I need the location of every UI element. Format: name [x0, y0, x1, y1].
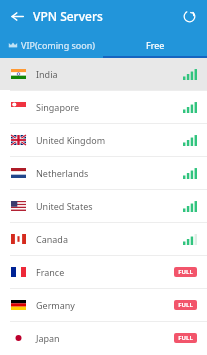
staticText: France — [36, 266, 174, 278]
button[interactable]: Netherlands — [0, 157, 207, 189]
staticText: Singapore — [36, 101, 183, 113]
staticText: Netherlands — [36, 167, 183, 179]
staticText: FULL — [178, 301, 193, 309]
staticText: Germany — [36, 299, 174, 311]
staticText: Free — [146, 39, 165, 51]
staticText: FULL — [178, 268, 193, 276]
button[interactable]: VIP(coming soon) — [0, 32, 103, 58]
staticText: VIP(coming soon) — [21, 39, 95, 51]
button[interactable]: Free — [103, 32, 207, 58]
staticText: United Kingdom — [36, 134, 183, 146]
button[interactable]: India — [0, 58, 207, 90]
button[interactable]: Back — [4, 3, 30, 29]
button[interactable]: France — [0, 256, 207, 288]
staticText: VPN Servers — [33, 8, 103, 24]
button[interactable]: Canada — [0, 223, 207, 255]
button[interactable]: Germany — [0, 289, 207, 321]
staticText: Japan — [36, 332, 174, 344]
button[interactable]: Japan — [0, 322, 207, 354]
staticText: Canada — [36, 233, 183, 245]
button[interactable]: Singapore — [0, 91, 207, 123]
staticText: FULL — [178, 334, 193, 342]
button[interactable]: Refresh — [176, 3, 202, 29]
staticText: India — [36, 68, 183, 80]
staticText: United States — [36, 200, 183, 212]
button[interactable]: United Kingdom — [0, 124, 207, 156]
button[interactable]: United States — [0, 190, 207, 222]
